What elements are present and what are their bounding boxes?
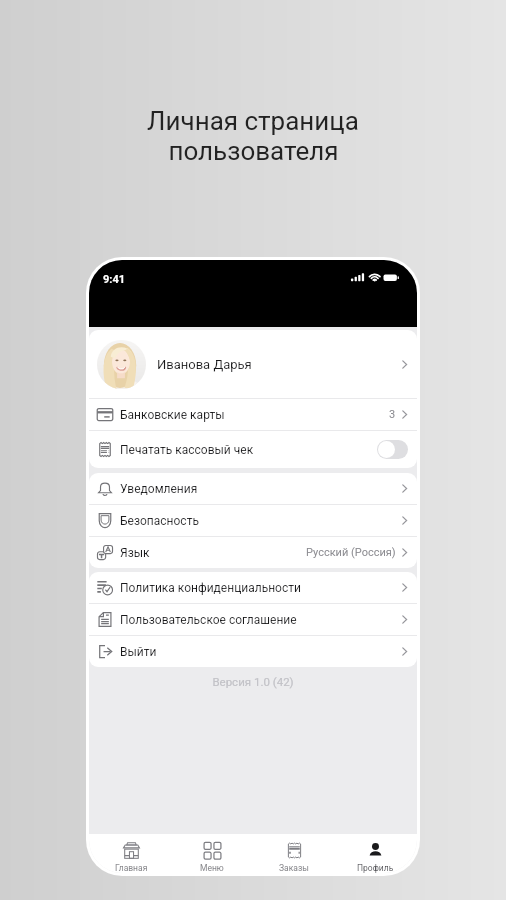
staticText: Банковские карты — [120, 408, 225, 422]
staticText: Версия 1.0 (42) — [89, 675, 417, 688]
staticText: Иванова Дарья — [157, 357, 252, 372]
button[interactable]: Профиль — [336, 834, 414, 873]
button[interactable]: Выйти — [89, 636, 417, 667]
staticText: Главная — [115, 863, 148, 873]
button[interactable]: Печатать кассовый чек — [89, 431, 417, 468]
staticText: Русский (Россия) — [306, 546, 396, 559]
staticText: Печатать кассовый чек — [120, 443, 254, 457]
staticText: пользователя — [168, 136, 339, 166]
staticText: Уведомления — [120, 482, 198, 496]
staticText: Язык — [120, 546, 150, 560]
staticText: Личная страница — [147, 106, 359, 136]
staticText: Безопасность — [120, 514, 199, 528]
staticText: 3 — [389, 408, 396, 421]
button[interactable]: Безопасность — [89, 505, 417, 536]
staticText: Профиль — [357, 863, 394, 873]
button[interactable]: Главная — [92, 834, 170, 873]
staticText: Пользовательское соглашение — [120, 613, 297, 627]
button[interactable]: Печатать кассовый чек — [377, 440, 408, 459]
button[interactable]: Иванова Дарья — [89, 330, 417, 398]
button[interactable]: Банковские карты — [89, 399, 417, 430]
staticText: 9:41 — [103, 273, 126, 286]
button[interactable]: Заказы — [255, 834, 333, 873]
button[interactable]: Политика конфиденциальности — [89, 572, 417, 603]
button[interactable]: Язык — [89, 537, 417, 568]
button[interactable]: Меню — [173, 834, 251, 873]
staticText: Заказы — [279, 863, 309, 873]
staticText: Политика конфиденциальности — [120, 581, 301, 595]
staticText: Меню — [200, 863, 224, 873]
staticText: Выйти — [120, 645, 157, 659]
button[interactable]: Уведомления — [89, 473, 417, 504]
button[interactable]: Пользовательское соглашение — [89, 604, 417, 635]
